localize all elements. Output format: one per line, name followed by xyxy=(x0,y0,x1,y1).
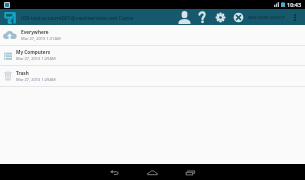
staticText: 10:43 xyxy=(287,1,302,8)
staticText: iOS-test-account001@vaultservices.net Co… xyxy=(21,14,305,21)
button[interactable]: Home xyxy=(146,166,159,179)
button[interactable]: Everywhere xyxy=(0,25,305,46)
button[interactable]: Logout label xyxy=(248,9,305,25)
button[interactable]: Help xyxy=(195,9,209,25)
button[interactable]: Recent apps xyxy=(184,166,197,179)
button[interactable]: Logout xyxy=(231,9,245,25)
button[interactable]: More options xyxy=(289,9,300,25)
button[interactable]: Settings xyxy=(213,9,227,25)
staticText: Everywhere xyxy=(21,29,49,35)
button[interactable]: App home xyxy=(3,10,17,25)
staticText: SAIR FAZER LOGOUT xyxy=(248,15,286,20)
button[interactable]: Trash xyxy=(0,66,305,87)
staticText: My Computers xyxy=(16,49,51,55)
staticText: Mar 27, 2013 1:29AM xyxy=(16,77,56,82)
staticText: Mar 27, 2013 1:29AM xyxy=(16,56,56,61)
button[interactable]: Back xyxy=(108,166,121,179)
staticText: Mar 27, 2013 1:31AM xyxy=(21,36,61,41)
button[interactable]: My Computers xyxy=(0,46,305,66)
button[interactable]: Account xyxy=(177,9,191,25)
staticText: Trash xyxy=(16,70,29,76)
